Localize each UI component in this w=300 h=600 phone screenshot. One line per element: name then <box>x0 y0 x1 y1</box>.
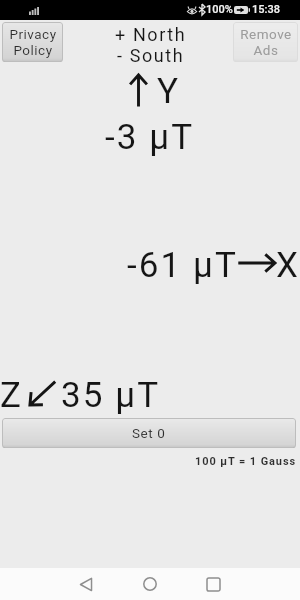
staticText: Y <box>157 71 181 112</box>
button[interactable]: Set 0 <box>2 418 296 448</box>
button[interactable]: Remove Ads <box>233 22 298 62</box>
staticText: + North <box>115 24 187 45</box>
button[interactable]: Recents <box>194 568 233 600</box>
staticText: - South <box>117 45 185 66</box>
button[interactable]: Home <box>130 568 169 600</box>
staticText: Set 0 <box>132 425 166 441</box>
button[interactable]: Privacy Policy <box>2 22 63 62</box>
staticText: 100 µT = 1 Gauss <box>195 455 297 468</box>
staticText: X <box>276 245 300 286</box>
staticText: 100% <box>206 3 233 16</box>
staticText: -3 µT <box>105 117 195 158</box>
staticText: Privacy Policy <box>9 26 57 59</box>
staticText: 15:38 <box>252 3 280 16</box>
staticText: 35 µT <box>61 375 161 416</box>
button[interactable]: Back <box>66 568 105 600</box>
staticText: Remove Ads <box>240 26 292 59</box>
staticText: -61 µT <box>127 245 239 286</box>
staticText: Z <box>0 375 24 416</box>
